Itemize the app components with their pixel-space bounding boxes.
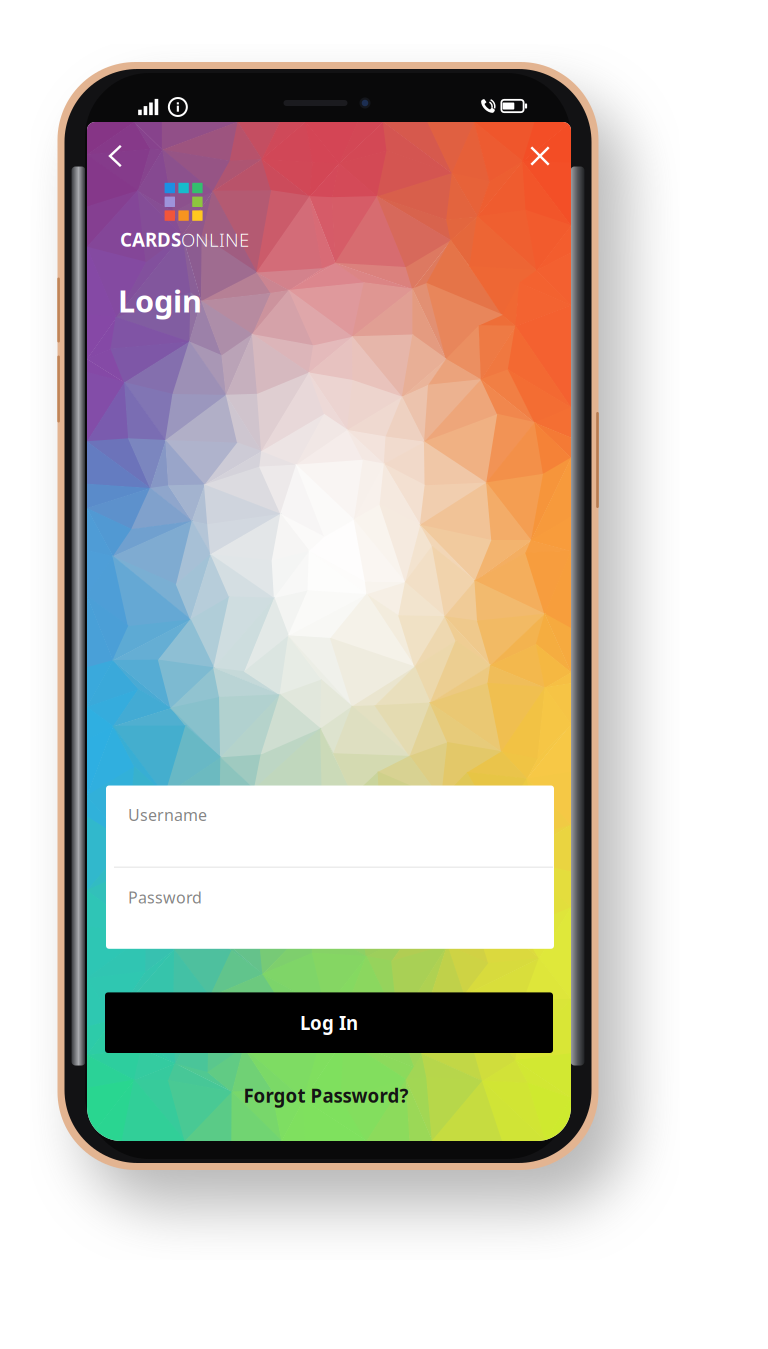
staticText: Log In [300, 1010, 358, 1035]
staticText: ONLINE [181, 227, 249, 252]
button[interactable]: Forgot Password? [206, 1075, 446, 1115]
staticText: Login [118, 280, 202, 321]
button[interactable]: Close [517, 133, 563, 179]
button[interactable]: Log In [105, 992, 553, 1053]
staticText: Forgot Password? [243, 1083, 408, 1108]
staticText: CARDS [120, 227, 181, 252]
button[interactable]: Back [92, 133, 138, 179]
staticText: Password [128, 887, 202, 908]
button[interactable]: Password [106, 868, 554, 949]
button[interactable]: Username [106, 785, 554, 867]
staticText: Username [128, 804, 207, 825]
